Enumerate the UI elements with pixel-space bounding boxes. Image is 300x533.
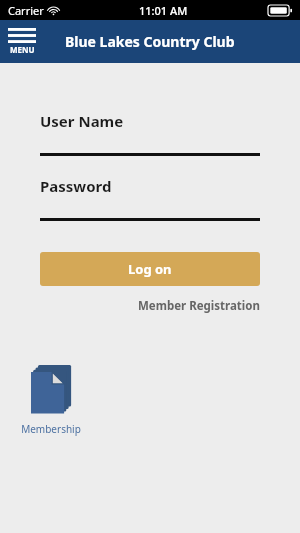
staticText: Member Registration [138,298,260,314]
staticText: 11:01 AM [139,3,188,18]
staticText: MENU [10,44,35,55]
button[interactable]: Log on [40,252,260,286]
staticText: Blue Lakes Country Club [65,32,235,51]
staticText: Log on [128,260,172,278]
staticText: User Name [40,111,124,131]
staticText: Carrier [8,3,44,18]
button[interactable]: Menu [6,26,38,57]
staticText: Password [40,176,112,196]
button[interactable]: Member Registration [136,296,262,316]
staticText: Membership [21,422,81,436]
button[interactable]: Membership [14,364,88,436]
